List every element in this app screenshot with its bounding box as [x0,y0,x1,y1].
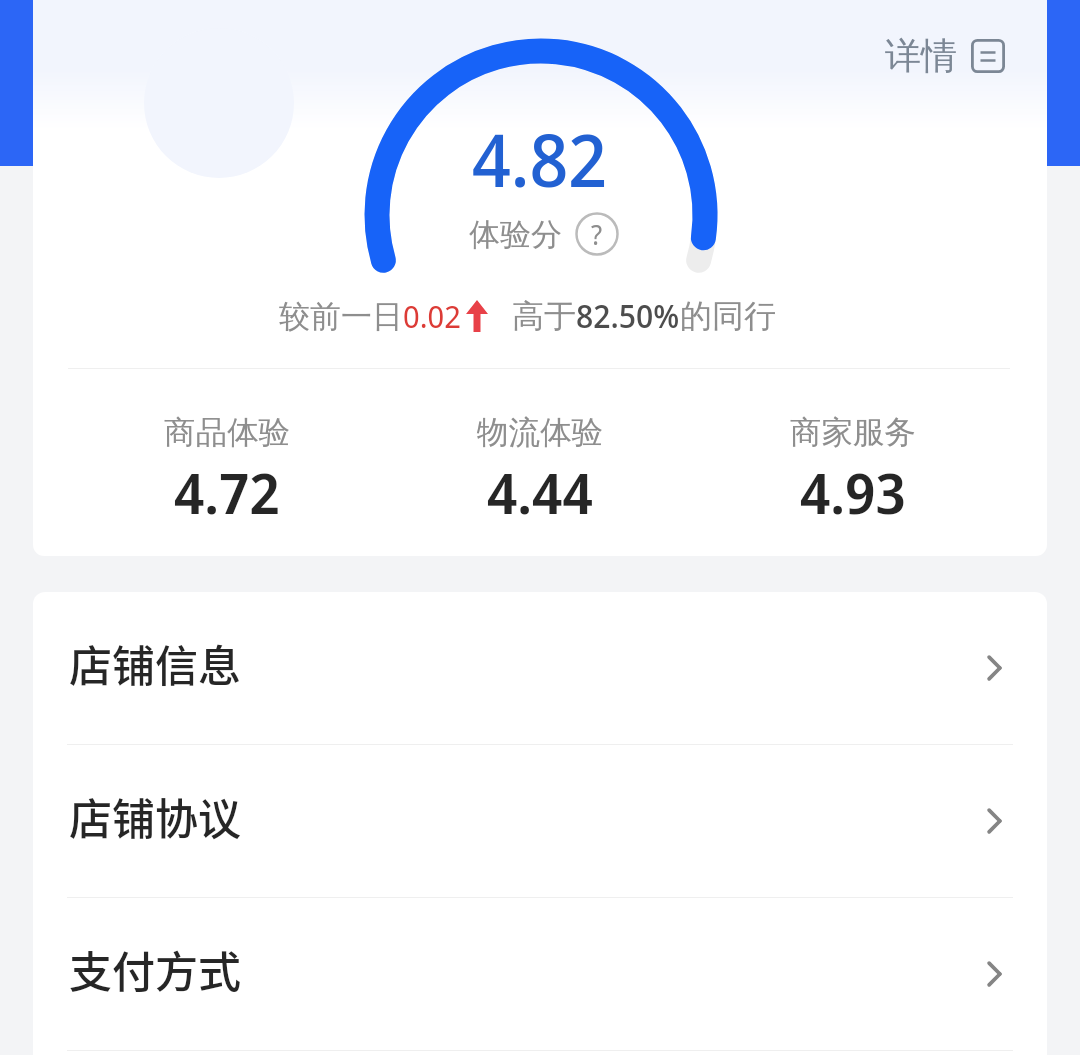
staticText: 详情 [885,33,957,78]
button[interactable]: 支付方式 [33,898,1047,1050]
staticText: 的同行 [680,296,776,336]
staticText: 物流体验 [477,413,603,453]
button[interactable]: 店铺协议 [33,745,1047,897]
staticText: 店铺信息 [69,632,241,694]
staticText: 商品体验 [164,413,290,453]
staticText: 4.72 [174,454,280,530]
staticText: 高于 [512,296,576,336]
staticText: 4.93 [800,454,906,530]
staticText: 4.82 [472,110,608,208]
staticText: 体验分 [469,215,562,254]
button[interactable]: 帮助 [575,212,619,256]
staticText: 4.44 [487,454,593,530]
staticText: 支付方式 [69,938,241,1000]
staticText: 82.50% [576,294,680,338]
staticText: 店铺协议 [69,785,241,847]
staticText: 0.02 [403,295,461,337]
button[interactable]: 店铺信息 [33,592,1047,744]
button[interactable]: 详情 [885,33,1005,78]
staticText: ? [591,216,603,253]
staticText: 商家服务 [790,413,916,453]
staticText: 较前一日 [279,297,403,336]
